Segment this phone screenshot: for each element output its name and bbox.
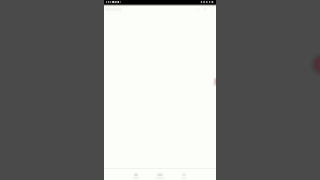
button[interactable]: Home	[124, 169, 148, 180]
button[interactable]: Messages	[148, 169, 172, 180]
staticText: Activity	[105, 6, 122, 13]
button[interactable]: Profile	[172, 169, 196, 180]
